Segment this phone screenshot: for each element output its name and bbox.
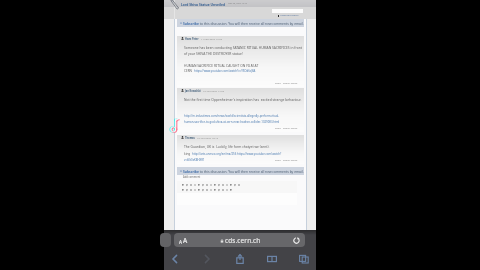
button[interactable]: Bookmarks [262, 249, 282, 268]
staticText: Subscribe [183, 21, 199, 25]
button[interactable]: Subscribe [177, 19, 304, 27]
staticText: Reply [275, 82, 281, 85]
staticText: Report abuse [283, 127, 298, 130]
button[interactable]: Reply [275, 127, 298, 130]
staticText: Reply [275, 127, 281, 130]
staticText: http://arts.unesco.org/en/ma/256 https:/… [192, 152, 282, 156]
button[interactable] [177, 181, 297, 205]
staticText: Jan Kowalski [185, 89, 201, 92]
button[interactable]: Reload [292, 236, 301, 245]
staticText: http://m.industimes.com/news/world/scien… [184, 114, 280, 118]
staticText: Hans Peter [185, 37, 199, 40]
staticText: Report abuse [283, 82, 298, 85]
staticText: v=kEt0zKBHXR1 [184, 158, 205, 162]
button[interactable]: Back [165, 249, 185, 268]
staticText: CERN [184, 69, 194, 73]
staticText: Someone has been conducting SATANIC RITU… [184, 45, 302, 49]
button[interactable]: Jan Kowalski [177, 88, 304, 132]
staticText: Add comment [183, 175, 201, 179]
staticText: A [179, 239, 183, 245]
button[interactable]: Share [230, 249, 250, 268]
staticText: Advanced Search [280, 14, 299, 17]
staticText: Lord Shiva Statue Unveiled [181, 2, 226, 6]
staticText: Reply [275, 159, 281, 162]
staticText: A [183, 236, 188, 245]
staticText: Report abuse [283, 159, 298, 162]
staticText: https://www.youtube.com/watch?v=Y5Dd6cJ8… [194, 69, 256, 73]
staticText: May 08, 2024 12:10 [228, 2, 247, 5]
staticText: cds.cern.ch [225, 236, 261, 245]
button[interactable]: Reply [275, 159, 298, 162]
staticText: The Guardian, UK is Luckily, life form c… [184, 144, 270, 148]
button[interactable]: Subscribe [177, 167, 304, 175]
button[interactable]: Lord Shiva Statue Unveiled [181, 1, 247, 6]
staticText: king [184, 152, 192, 156]
button[interactable]: Forward [197, 249, 217, 268]
button[interactable]: Tabs [294, 249, 314, 268]
staticText: to this discussion. You will then receiv… [199, 21, 304, 25]
staticText: to this discussion. You will then receiv… [199, 169, 304, 173]
button[interactable]: Hans Peter [177, 36, 304, 87]
button[interactable]: Thomas [177, 135, 304, 164]
button[interactable]: Advanced Search [278, 14, 299, 17]
staticText: Not the first time Oppenheimer's inspira… [184, 97, 302, 101]
staticText: human-sacrifice-to-god-shiva-at-cern-nea… [184, 120, 280, 124]
button[interactable]: A [174, 233, 305, 247]
staticText: Subscribe [183, 169, 199, 173]
staticText: of your SHIVA THE DESTROYER statue! [184, 51, 243, 55]
staticText: HUMAN SACRIFICE RITUAL CAUGHT ON FILM AT [184, 63, 259, 67]
staticText: 10 Apr 2024 16:12 [197, 136, 219, 139]
staticText: 11 Feb 2024 12:33 [201, 37, 223, 40]
staticText: 10 Apr 2024 11:03 [203, 89, 225, 92]
staticText: Thomas [185, 136, 195, 139]
button[interactable]: Reply [275, 82, 298, 85]
